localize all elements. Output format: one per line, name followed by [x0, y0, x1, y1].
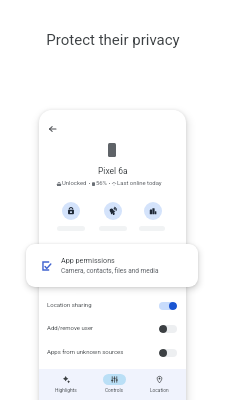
button[interactable]: Apps from unknown sources: [47, 340, 177, 362]
staticText: Protect their privacy: [46, 31, 180, 49]
button[interactable]: Location sharing: [47, 293, 177, 315]
staticText: Apps from unknown sources: [47, 348, 124, 355]
staticText: Camera, contacts, files and media: [61, 267, 159, 275]
button[interactable]: Back: [45, 122, 59, 136]
staticText: Add/remove user: [47, 324, 94, 331]
button[interactable]: Add/remove user: [47, 316, 177, 338]
staticText: 56%: [96, 180, 107, 187]
button[interactable]: Highlights: [52, 374, 80, 394]
staticText: Pixel 6a: [98, 166, 128, 176]
staticText: Controls: [105, 388, 124, 394]
button[interactable]: Ring: [104, 202, 122, 220]
button[interactable]: App permissions: [26, 244, 198, 287]
staticText: Location: [150, 388, 169, 394]
staticText: Unlocked: [62, 180, 87, 187]
staticText: Last online today: [117, 180, 162, 187]
staticText: Location sharing: [47, 301, 92, 308]
staticText: App permissions: [61, 256, 115, 264]
button[interactable]: Device stats: [144, 202, 162, 220]
button[interactable]: Controls: [100, 374, 128, 394]
button[interactable]: Lock: [62, 202, 80, 220]
button[interactable]: Location: [145, 374, 173, 394]
staticText: Highlights: [55, 388, 77, 394]
